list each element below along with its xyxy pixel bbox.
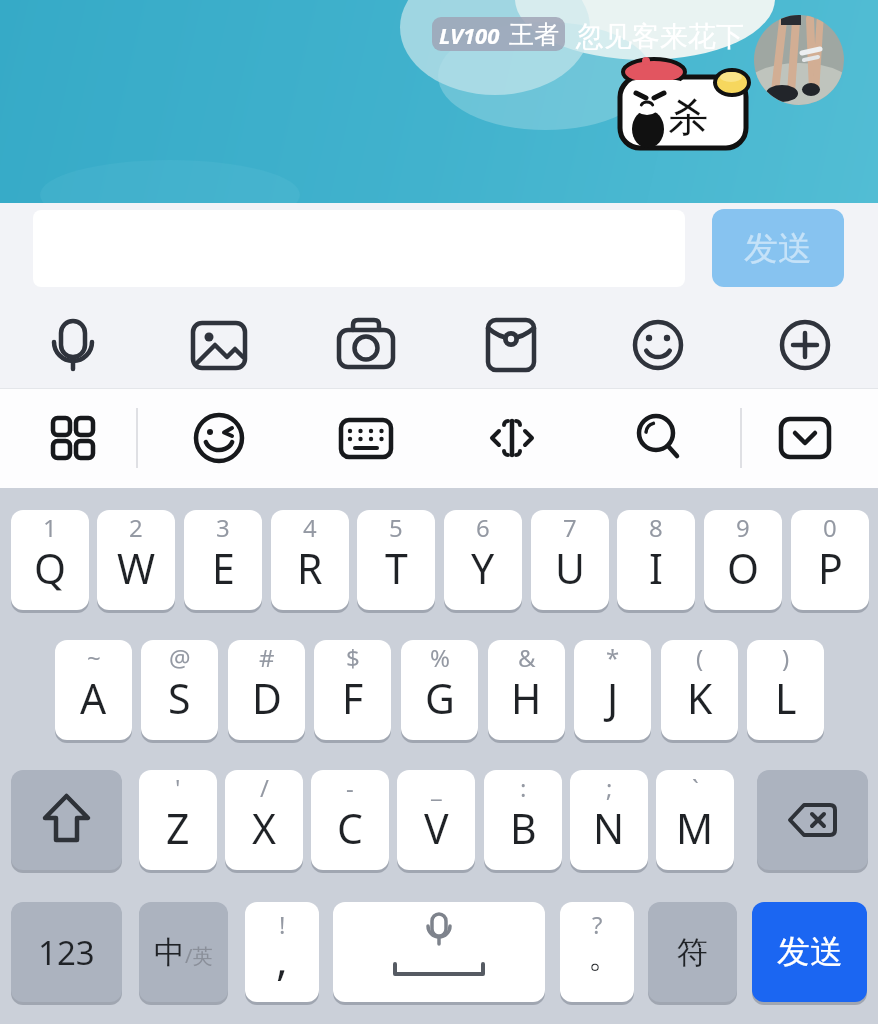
staticText: 4 xyxy=(303,511,317,544)
staticText: LV100 xyxy=(439,20,500,50)
button[interactable]: 0 xyxy=(791,510,869,610)
staticText: K xyxy=(687,670,713,726)
staticText: _ xyxy=(431,771,442,804)
staticText: O xyxy=(727,540,760,596)
button[interactable]: 123 xyxy=(11,902,122,1002)
staticText: * xyxy=(606,641,620,674)
staticText: ? xyxy=(592,908,603,941)
staticText: N xyxy=(593,800,625,856)
button[interactable]: _ xyxy=(397,770,475,870)
staticText: ! xyxy=(279,908,286,941)
staticText: X xyxy=(252,800,277,856)
staticText: & xyxy=(518,641,536,674)
staticText: 1 xyxy=(43,511,57,544)
staticText: 0 xyxy=(823,511,837,544)
button[interactable]: 9 xyxy=(704,510,782,610)
button[interactable] xyxy=(333,902,545,1002)
staticText: M xyxy=(676,800,714,856)
staticText: 发送 xyxy=(744,227,812,270)
staticText: 8 xyxy=(649,511,663,544)
staticText: @ xyxy=(169,641,191,674)
button[interactable] xyxy=(336,315,396,375)
button[interactable] xyxy=(189,315,249,375)
button[interactable]: $ xyxy=(314,640,391,740)
staticText: # xyxy=(259,641,275,674)
button[interactable] xyxy=(43,315,103,375)
button[interactable]: # xyxy=(228,640,305,740)
button[interactable] xyxy=(757,770,868,870)
staticText: B xyxy=(510,800,537,856)
button[interactable] xyxy=(336,408,396,468)
button[interactable]: ? xyxy=(560,902,634,1002)
staticText: 2 xyxy=(129,511,143,544)
staticText: 符 xyxy=(677,933,708,972)
staticText: Q xyxy=(34,540,67,596)
staticText: ~ xyxy=(87,641,101,674)
staticText: 9 xyxy=(736,511,750,544)
button[interactable]: - xyxy=(311,770,389,870)
staticText: 5 xyxy=(389,511,403,544)
button[interactable]: ! xyxy=(245,902,319,1002)
button[interactable]: @ xyxy=(141,640,218,740)
staticText: E xyxy=(212,540,235,596)
button[interactable]: 5 xyxy=(357,510,435,610)
button[interactable] xyxy=(482,408,542,468)
button[interactable]: 8 xyxy=(617,510,695,610)
button[interactable]: LV100 xyxy=(432,17,565,51)
button[interactable]: * xyxy=(574,640,651,740)
staticText: 忽见客来花下 xyxy=(576,19,744,54)
staticText: 中 xyxy=(154,933,185,972)
staticText: : xyxy=(520,771,527,804)
staticText: A xyxy=(80,670,107,726)
button[interactable]: & xyxy=(488,640,565,740)
staticText: I xyxy=(649,540,663,596)
staticText: Y xyxy=(471,540,495,596)
button[interactable]: 中 xyxy=(139,902,228,1002)
staticText: ) xyxy=(782,641,790,674)
button[interactable]: 3 xyxy=(184,510,262,610)
staticText: P xyxy=(818,540,843,596)
button[interactable]: ; xyxy=(570,770,648,870)
staticText: - xyxy=(346,771,354,804)
button[interactable]: ~ xyxy=(55,640,132,740)
staticText: 发送 xyxy=(777,931,843,973)
staticText: / xyxy=(260,771,269,804)
button[interactable]: / xyxy=(225,770,303,870)
button[interactable] xyxy=(482,315,542,375)
staticText: % xyxy=(430,641,450,674)
button[interactable] xyxy=(628,408,688,468)
button[interactable]: 发送 xyxy=(752,902,867,1002)
button[interactable]: 4 xyxy=(271,510,349,610)
button[interactable]: ' xyxy=(139,770,217,870)
staticText: L xyxy=(775,670,797,726)
button[interactable]: % xyxy=(401,640,478,740)
button[interactable] xyxy=(11,770,122,870)
button[interactable] xyxy=(43,408,103,468)
staticText: G xyxy=(425,670,455,726)
button[interactable] xyxy=(775,408,835,468)
staticText: 王者 xyxy=(509,19,559,50)
button[interactable]: 2 xyxy=(97,510,175,610)
button[interactable] xyxy=(775,315,835,375)
button[interactable]: 符 xyxy=(648,902,737,1002)
staticText: $ xyxy=(346,641,360,674)
button[interactable]: : xyxy=(484,770,562,870)
button[interactable]: 6 xyxy=(444,510,522,610)
button[interactable]: 1 xyxy=(11,510,89,610)
staticText: T xyxy=(385,540,408,596)
button[interactable]: 发送 xyxy=(712,209,844,287)
staticText: D xyxy=(252,670,282,726)
button[interactable]: ( xyxy=(661,640,738,740)
button[interactable]: ) xyxy=(747,640,824,740)
staticText: F xyxy=(342,670,364,726)
staticText: W xyxy=(117,540,156,596)
staticText: H xyxy=(511,670,542,726)
button[interactable] xyxy=(628,315,688,375)
staticText: V xyxy=(424,800,449,856)
staticText: U xyxy=(555,540,585,596)
button[interactable] xyxy=(754,15,844,105)
button[interactable] xyxy=(189,408,249,468)
button[interactable]: 7 xyxy=(531,510,609,610)
button[interactable]: ` xyxy=(656,770,734,870)
